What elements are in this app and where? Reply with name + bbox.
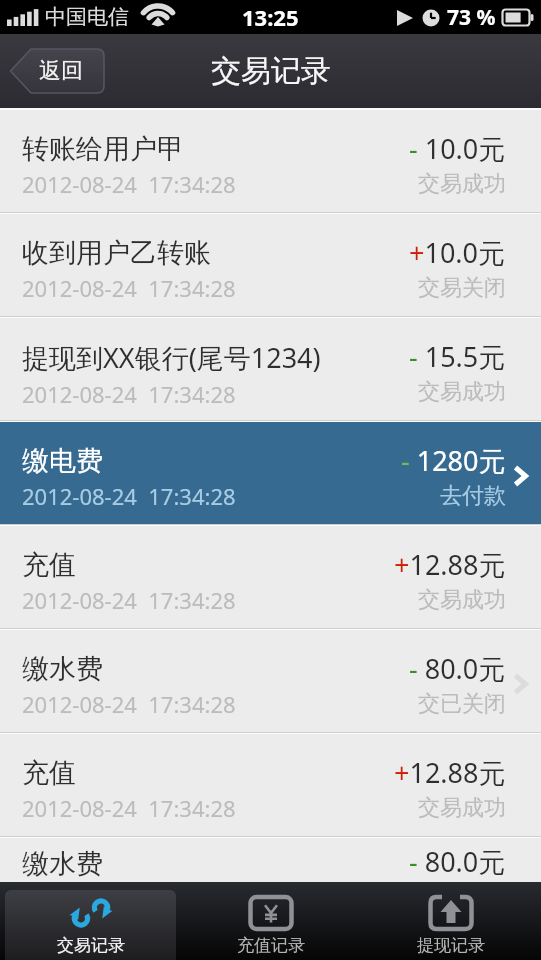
staticText: 交已关闭 — [418, 690, 506, 718]
staticText: +10.0元 — [409, 234, 506, 271]
staticText: 交易成功 — [418, 378, 506, 406]
staticText: - 15.5元 — [409, 338, 506, 375]
staticText: 返回 — [39, 57, 83, 85]
staticText: +12.88元 — [394, 546, 506, 583]
staticText: 去付款 — [440, 482, 506, 510]
staticText: 交易成功 — [418, 586, 506, 614]
button[interactable]: 充值 — [0, 734, 541, 836]
staticText: 2012-08-24 17:34:28 — [22, 481, 236, 511]
button[interactable]: 缴水费 — [0, 838, 541, 882]
button[interactable]: 充值记录 — [186, 890, 356, 960]
staticText: 转账给用户甲 — [22, 132, 184, 166]
staticText: 2012-08-24 17:34:28 — [22, 273, 236, 303]
staticText: - 1280元 — [401, 442, 506, 479]
button[interactable]: 缴电费 — [0, 422, 541, 524]
staticText: 2012-08-24 17:34:28 — [22, 793, 236, 823]
staticText: - 10.0元 — [409, 130, 506, 167]
staticText: 缴水费 — [22, 652, 103, 686]
staticText: 充值 — [22, 548, 76, 582]
staticText: 2012-08-24 17:34:28 — [22, 585, 236, 615]
staticText: 交易关闭 — [418, 274, 506, 302]
staticText: 13:25 — [242, 2, 299, 32]
button[interactable]: 充值 — [0, 526, 541, 628]
button[interactable]: 收到用户乙转账 — [0, 214, 541, 316]
staticText: - 80.0元 — [409, 843, 506, 880]
staticText: 交易记录 — [211, 52, 331, 90]
staticText: 缴电费 — [22, 444, 103, 478]
staticText: 2012-08-24 17:34:28 — [22, 689, 236, 719]
button[interactable]: 缴水费 — [0, 630, 541, 732]
button[interactable]: 提现记录 — [366, 890, 536, 960]
staticText: 缴水费 — [22, 847, 103, 881]
button[interactable]: 转账给用户甲 — [0, 110, 541, 212]
staticText: - 80.0元 — [409, 650, 506, 687]
staticText: 交易记录 — [57, 935, 125, 956]
button[interactable]: 交易记录 — [5, 890, 176, 960]
staticText: 2012-08-24 17:34:28 — [22, 379, 236, 409]
staticText: 充值记录 — [237, 935, 305, 956]
staticText: 提现记录 — [417, 935, 485, 956]
staticText: 73 % — [447, 3, 496, 32]
staticText: 充值 — [22, 756, 76, 790]
staticText: 中国电信 — [45, 4, 129, 30]
staticText: +12.88元 — [394, 754, 506, 791]
staticText: 2012-08-24 17:34:28 — [22, 169, 236, 199]
staticText: 收到用户乙转账 — [22, 236, 211, 270]
button[interactable]: 提现到XX银行(尾号1234) — [0, 318, 541, 420]
staticText: 交易成功 — [418, 170, 506, 198]
button[interactable]: 返回 — [9, 49, 104, 93]
staticText: 交易成功 — [418, 794, 506, 822]
staticText: 提现到XX银行(尾号1234) — [22, 339, 321, 376]
